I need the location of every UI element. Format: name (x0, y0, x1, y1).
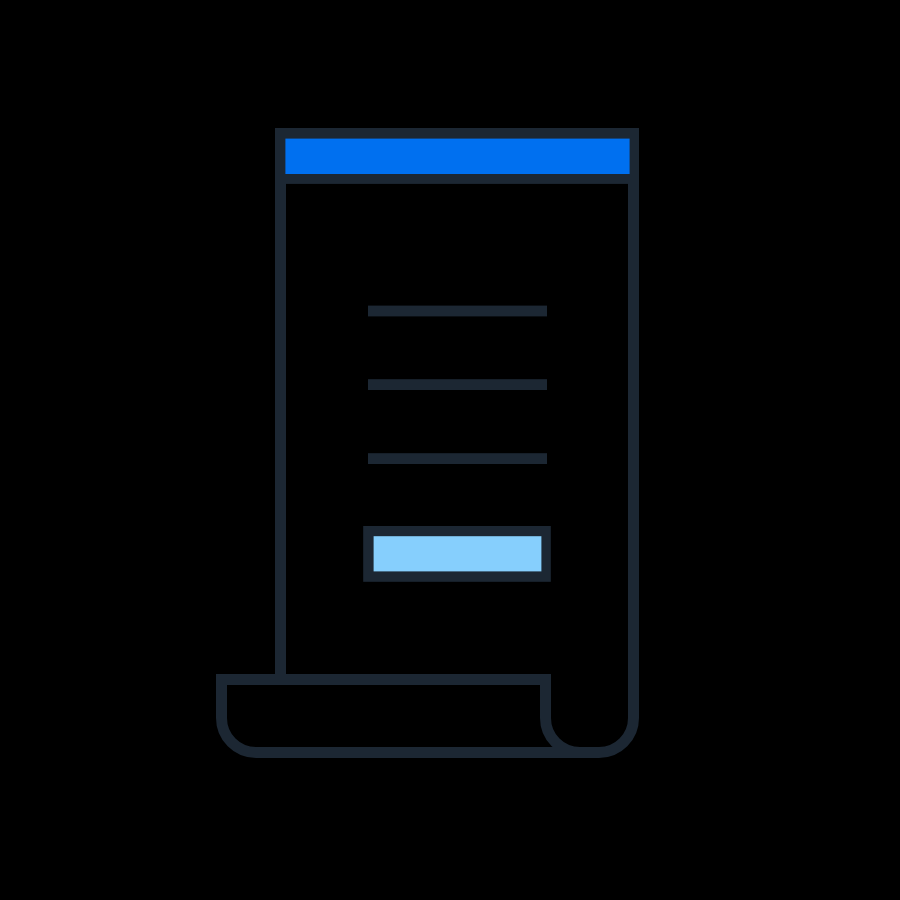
button[interactable]: Pay now button (363, 526, 551, 582)
button[interactable]: Receipt footer (216, 674, 639, 758)
button[interactable]: Receipt line item 1 (368, 298, 547, 324)
button[interactable]: Top app bar (285, 128, 639, 184)
button[interactable]: Receipt line item 3 (368, 446, 547, 472)
button[interactable]: Receipt line item 2 (368, 372, 547, 398)
